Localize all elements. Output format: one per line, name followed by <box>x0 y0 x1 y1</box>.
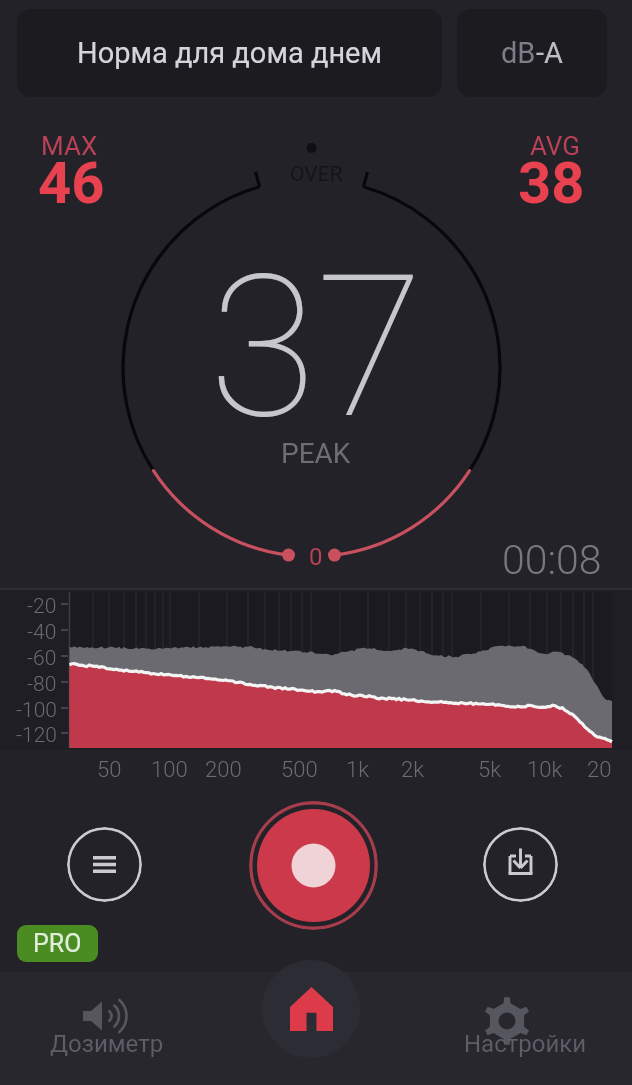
staticText: -A <box>536 36 563 70</box>
staticText: PRO <box>33 929 82 958</box>
staticText: 100 <box>151 757 188 783</box>
staticText: Норма для дома днем <box>77 36 382 70</box>
staticText: AVG <box>530 131 580 161</box>
staticText: -120 <box>16 723 57 748</box>
staticText: 20 <box>587 757 612 783</box>
button[interactable]: PRO <box>17 925 98 962</box>
staticText: Дозиметр <box>50 1030 164 1058</box>
staticText: -80 <box>27 672 57 697</box>
staticText: OVER <box>290 162 343 187</box>
staticText: 37 <box>209 233 424 463</box>
staticText: -20 <box>27 594 57 619</box>
button[interactable]: Record <box>249 801 378 930</box>
staticText: 500 <box>281 757 318 783</box>
staticText: 10k <box>527 757 563 783</box>
staticText: 46 <box>38 149 105 217</box>
button[interactable]: Дозиметр <box>0 972 214 1085</box>
button[interactable]: Home <box>262 960 360 1058</box>
staticText: dB <box>501 36 536 70</box>
staticText: -40 <box>27 620 57 645</box>
staticText: PEAK <box>281 437 351 470</box>
staticText: 2k <box>401 757 424 783</box>
staticText: Настройки <box>464 1030 587 1058</box>
button[interactable]: Menu <box>67 827 142 902</box>
staticText: 0 <box>309 543 323 571</box>
staticText: 5k <box>478 757 501 783</box>
button[interactable]: Норма для дома днем <box>17 9 442 97</box>
staticText: -100 <box>16 698 57 723</box>
button[interactable]: Настройки <box>418 972 632 1085</box>
staticText: 38 <box>518 149 585 217</box>
staticText: 00:08 <box>502 536 602 584</box>
button[interactable]: Save recording <box>483 827 558 902</box>
staticText: MAX <box>41 131 98 161</box>
staticText: 1k <box>346 757 369 783</box>
staticText: 200 <box>205 757 242 783</box>
staticText: -60 <box>27 646 57 671</box>
button[interactable]: dB <box>457 9 607 97</box>
staticText: 50 <box>97 757 122 783</box>
